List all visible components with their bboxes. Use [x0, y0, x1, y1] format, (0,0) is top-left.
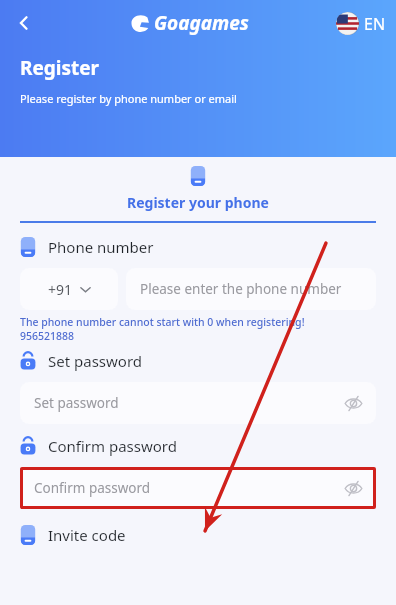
staticText: Set password	[48, 351, 143, 371]
staticText: Goagames	[154, 10, 249, 36]
staticText: Please enter the phone number	[140, 280, 342, 298]
staticText: Set password	[34, 394, 119, 412]
button[interactable]: EN	[336, 12, 386, 35]
button[interactable]: Show password	[342, 392, 364, 414]
staticText: The phone number cannot start with 0 whe…	[20, 315, 305, 329]
button[interactable]: Back	[6, 5, 42, 41]
staticText: Phone number	[48, 237, 154, 257]
staticText: Please register by phone number or email	[20, 91, 237, 106]
staticText: +91	[48, 280, 73, 299]
button[interactable]: Show password	[342, 477, 364, 499]
staticText: Confirm password	[48, 436, 177, 456]
staticText: Confirm password	[34, 479, 151, 497]
staticText: 956521888	[20, 329, 75, 343]
button[interactable]: Confirm password	[20, 467, 376, 509]
button[interactable]: +91	[20, 268, 118, 310]
button[interactable]: Please enter the phone number	[126, 268, 376, 310]
staticText: EN	[364, 13, 386, 35]
button[interactable]: Set password	[20, 382, 376, 424]
staticText: Register your phone	[127, 193, 269, 212]
staticText: Invite code	[48, 525, 126, 545]
button[interactable]: Register your phone	[127, 166, 269, 212]
staticText: Register	[20, 55, 100, 81]
